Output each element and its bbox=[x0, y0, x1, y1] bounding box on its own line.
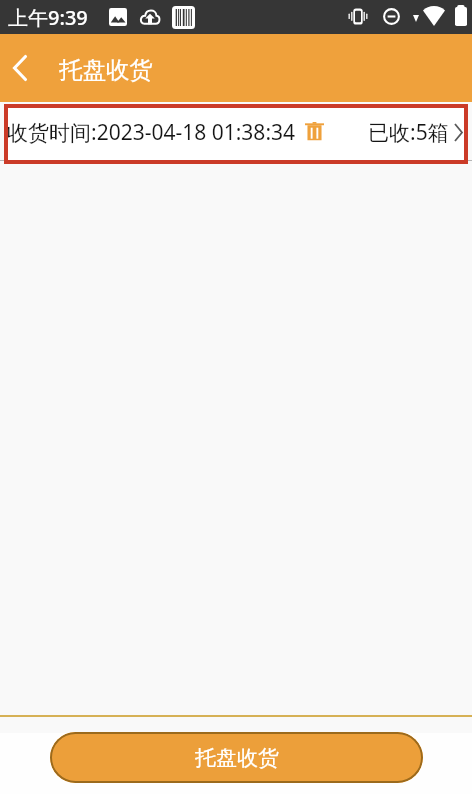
staticText: 上午9:39 bbox=[8, 4, 88, 31]
button[interactable]: 托盘收货 bbox=[50, 732, 423, 783]
button[interactable]: 收货时间:2023-04-18 01:38:34 bbox=[4, 104, 468, 164]
staticText: 托盘收货 bbox=[195, 745, 279, 771]
staticText: 托盘收货 bbox=[59, 55, 153, 85]
button[interactable]: Delete bbox=[302, 119, 326, 143]
button[interactable]: Back bbox=[2, 34, 38, 102]
staticText: 已收:5箱 bbox=[368, 118, 449, 147]
staticText: 收货时间:2023-04-18 01:38:34 bbox=[7, 118, 296, 147]
